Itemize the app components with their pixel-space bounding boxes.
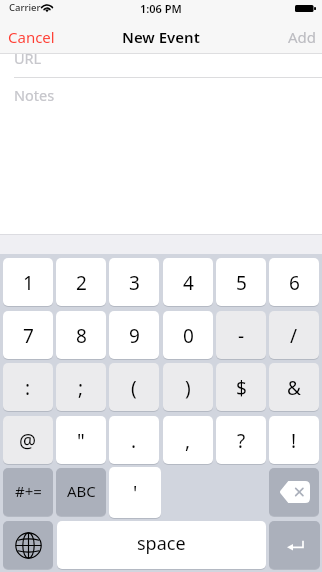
- button[interactable]: 3: [109, 258, 159, 306]
- button[interactable]: Cancel: [0, 20, 64, 54]
- button[interactable]: :: [3, 363, 53, 411]
- staticText: -: [238, 323, 245, 349]
- staticText: 2: [76, 270, 87, 296]
- button[interactable]: .: [109, 416, 159, 464]
- staticText: .: [131, 428, 137, 454]
- staticText: Add: [288, 27, 317, 47]
- button[interactable]: 4: [163, 258, 213, 306]
- staticText: 7: [23, 323, 34, 349]
- button[interactable]: 7: [3, 311, 53, 359]
- button[interactable]: Notes: [0, 78, 322, 114]
- button[interactable]: -: [216, 311, 266, 359]
- staticText: !: [291, 428, 297, 454]
- staticText: 1:06 PM: [140, 1, 182, 16]
- button[interactable]: ): [163, 363, 213, 411]
- button[interactable]: Add: [0, 20, 322, 54]
- button[interactable]: (: [109, 363, 159, 411]
- staticText: 9: [129, 323, 140, 349]
- button[interactable]: &: [269, 363, 319, 411]
- button[interactable]: Change keyboard: [3, 521, 53, 569]
- button[interactable]: Backspace: [269, 468, 319, 516]
- button[interactable]: !: [269, 416, 319, 464]
- staticText: @: [19, 428, 37, 454]
- button[interactable]: #+=: [3, 468, 53, 516]
- staticText: URL: [14, 48, 42, 68]
- staticText: 6: [289, 270, 300, 296]
- staticText: 5: [236, 270, 247, 296]
- button[interactable]: @: [3, 416, 53, 464]
- button[interactable]: 6: [269, 258, 319, 306]
- staticText: ,: [185, 428, 191, 454]
- staticText: /: [290, 323, 298, 349]
- staticText: ): [185, 375, 191, 401]
- button[interactable]: 0: [163, 311, 213, 359]
- button[interactable]: 9: [109, 311, 159, 359]
- button[interactable]: URL: [0, 54, 322, 77]
- button[interactable]: 2: [56, 258, 106, 306]
- staticText: (: [131, 375, 137, 401]
- button[interactable]: Return: [269, 521, 320, 569]
- button[interactable]: 8: [56, 311, 106, 359]
- button[interactable]: ABC: [56, 468, 106, 516]
- staticText: ": [77, 428, 85, 454]
- staticText: #+=: [15, 481, 42, 501]
- staticText: space: [137, 531, 186, 556]
- staticText: &: [287, 375, 301, 401]
- staticText: 1: [23, 270, 34, 296]
- staticText: ': [133, 480, 138, 506]
- button[interactable]: 1: [3, 258, 53, 306]
- button[interactable]: 5: [216, 258, 266, 306]
- button[interactable]: ;: [56, 363, 106, 411]
- staticText: New Event: [122, 27, 200, 47]
- staticText: Carrier: [9, 1, 41, 14]
- staticText: :: [25, 375, 31, 401]
- staticText: 0: [183, 323, 194, 349]
- staticText: 8: [76, 323, 87, 349]
- staticText: Notes: [14, 85, 55, 105]
- staticText: 4: [183, 270, 194, 296]
- button[interactable]: ': [109, 467, 161, 518]
- button[interactable]: ?: [216, 416, 266, 464]
- staticText: Cancel: [8, 27, 55, 47]
- staticText: ?: [237, 428, 246, 454]
- button[interactable]: ": [56, 416, 106, 464]
- button[interactable]: ,: [163, 416, 213, 464]
- staticText: $: [236, 375, 247, 401]
- button[interactable]: space: [57, 521, 266, 569]
- staticText: 3: [129, 270, 140, 296]
- staticText: ABC: [67, 481, 96, 501]
- button[interactable]: /: [269, 311, 319, 359]
- button[interactable]: $: [216, 363, 266, 411]
- staticText: ;: [78, 375, 84, 401]
